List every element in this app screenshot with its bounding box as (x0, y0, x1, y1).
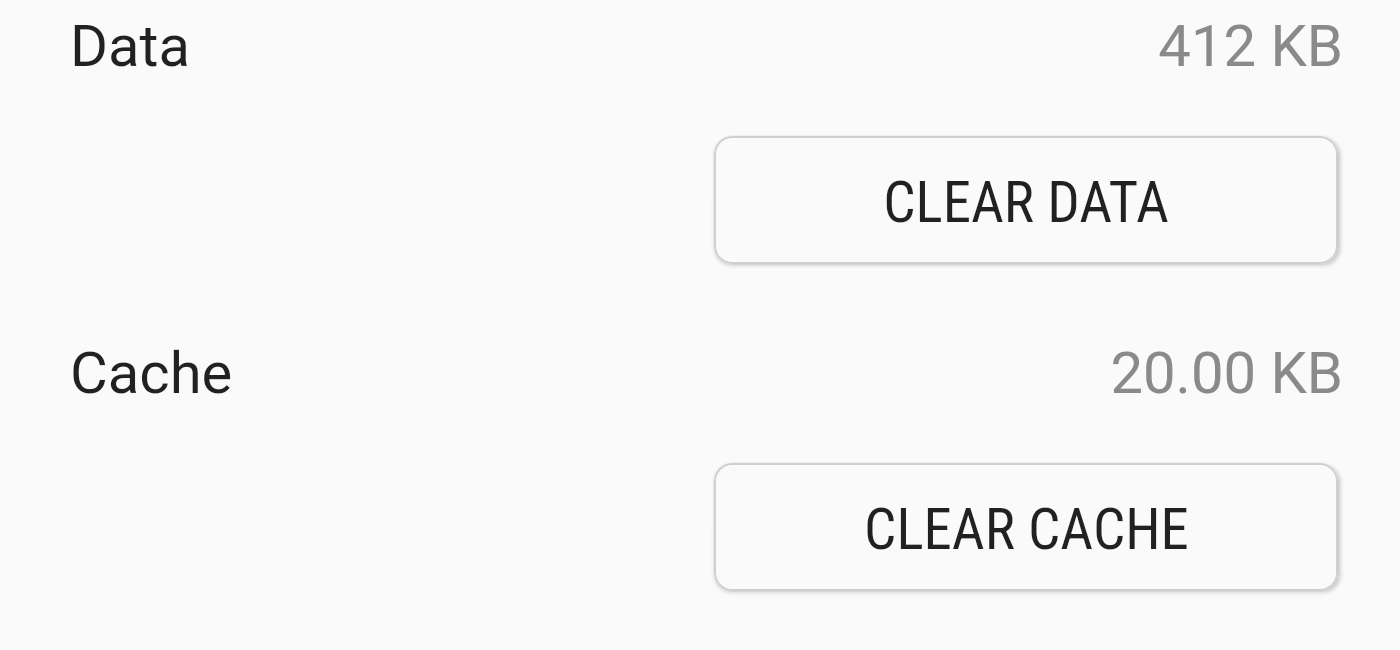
staticText: Cache (70, 339, 233, 407)
staticText: CLEAR CACHE (864, 496, 1189, 563)
button[interactable]: CLEAR CACHE (714, 463, 1338, 591)
staticText: CLEAR DATA (883, 169, 1169, 236)
staticText: 20.00 KB (1110, 339, 1343, 407)
button[interactable]: CLEAR DATA (714, 136, 1338, 264)
staticText: 412 KB (1158, 12, 1343, 80)
staticText: Data (70, 12, 191, 80)
